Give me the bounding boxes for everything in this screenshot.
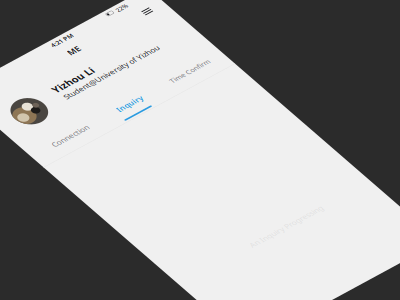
staticText: Connection xyxy=(41,163,111,181)
staticText: Student@University of Yizhou xyxy=(122,96,306,114)
staticText: ME xyxy=(188,27,210,47)
staticText: 4:21 PM xyxy=(178,3,219,17)
button[interactable]: Connection xyxy=(39,164,113,180)
staticText: Yizhou Li xyxy=(118,72,196,95)
